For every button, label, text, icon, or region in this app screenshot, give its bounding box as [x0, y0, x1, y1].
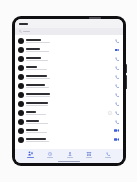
button[interactable]: Voicemail: [104, 151, 112, 159]
button[interactable]: Call: [15, 63, 123, 72]
button[interactable]: Call: [113, 82, 120, 89]
button[interactable]: Video call: [15, 135, 123, 144]
button[interactable]: Details: [106, 109, 113, 116]
button[interactable]: Call: [15, 90, 123, 99]
button[interactable]: Call: [15, 54, 123, 63]
button[interactable]: Video call: [113, 136, 120, 143]
button[interactable]: Video call: [113, 127, 120, 134]
button[interactable]: Call: [15, 117, 123, 126]
button[interactable]: Call: [113, 73, 120, 80]
button[interactable]: Keypad: [85, 151, 93, 159]
button[interactable]: Call: [15, 36, 123, 45]
button[interactable]: Call: [113, 109, 120, 116]
button[interactable]: Call: [15, 72, 123, 81]
button[interactable]: Contacts: [66, 151, 74, 159]
button[interactable]: Call: [15, 99, 123, 108]
button[interactable]: Video call: [113, 46, 120, 53]
button[interactable]: Video call: [15, 45, 123, 54]
button[interactable]: Favourites: [26, 150, 35, 159]
button[interactable]: Call: [113, 100, 120, 107]
button[interactable]: Details: [15, 108, 123, 117]
button[interactable]: Call: [113, 64, 120, 71]
button[interactable]: Call: [113, 118, 120, 125]
button[interactable]: Recents: [46, 151, 54, 159]
button[interactable]: Call: [15, 81, 123, 90]
button[interactable]: [15, 28, 123, 35]
button[interactable]: Video call: [15, 126, 123, 135]
button[interactable]: Call: [113, 37, 120, 44]
button[interactable]: Call: [113, 91, 120, 98]
button[interactable]: Call: [113, 55, 120, 62]
